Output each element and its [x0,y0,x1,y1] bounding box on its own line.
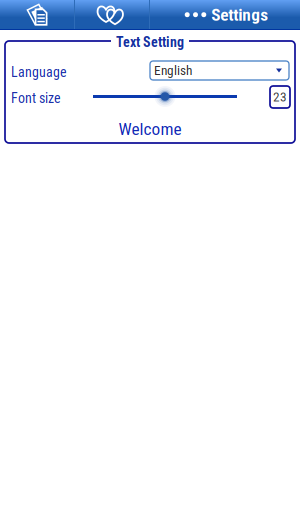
staticText: Font size [11,90,61,106]
staticText: Settings [211,5,268,25]
button[interactable]: Favourites [75,0,149,29]
staticText: 23 [273,89,287,105]
staticText: Language [11,64,67,80]
button[interactable]: Documents [0,0,74,29]
button[interactable]: Settings [150,0,300,29]
staticText: Welcome [118,119,181,139]
button[interactable]: English [150,61,289,80]
staticText: English [154,63,192,78]
staticText: Text Setting [116,34,184,50]
